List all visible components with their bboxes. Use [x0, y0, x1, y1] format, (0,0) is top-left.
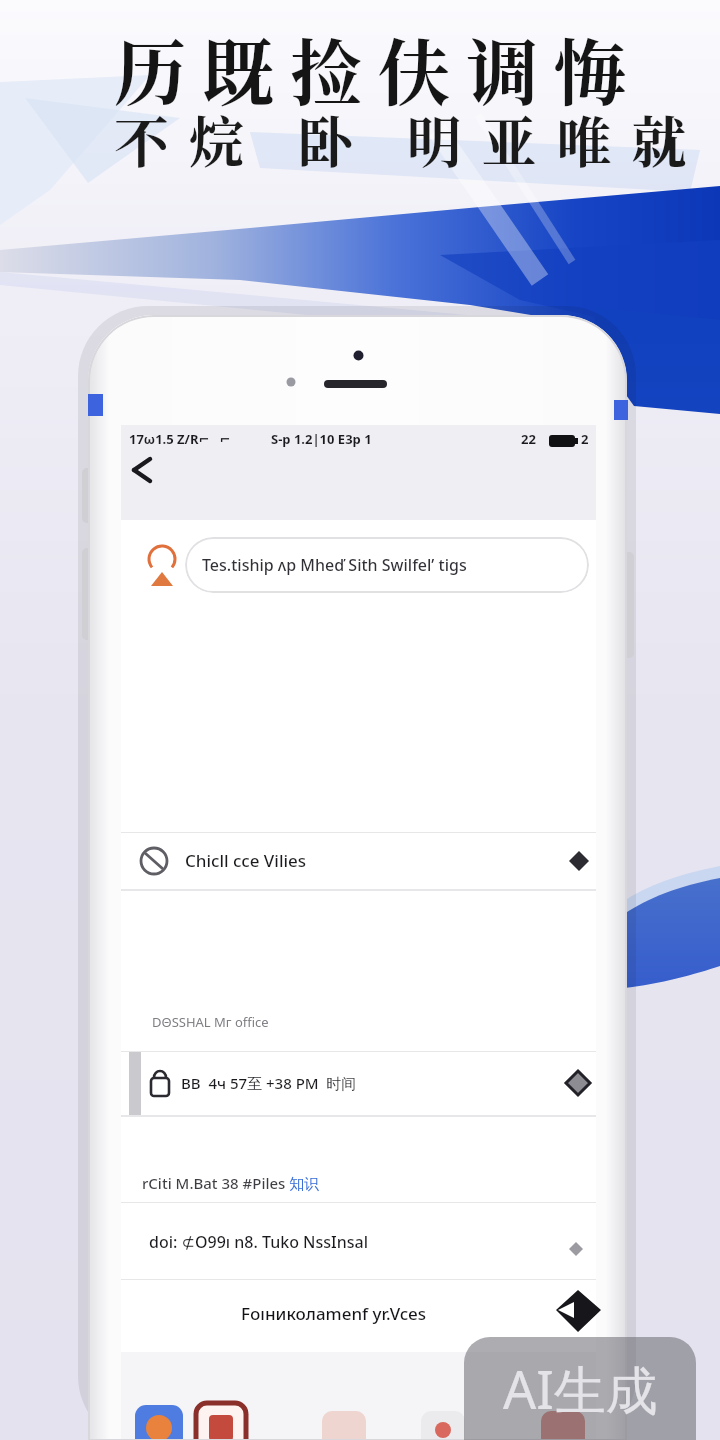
staticText: Chicll cce Vilies — [185, 849, 307, 872]
staticText: S-p 1.2|10 E3p 1 — [271, 430, 372, 448]
staticText: rCiti M.Bat 38 #Piles 知识 — [142, 1173, 320, 1193]
staticText: 22 — [521, 430, 536, 448]
button[interactable]: doi: ⊄O99ı n8. Tuko NssInsal — [121, 1203, 596, 1279]
staticText: 不烷 卧 明亚唯就 — [114, 99, 707, 178]
staticText: doi: ⊄O99ı n8. Tuko NssInsal — [149, 1231, 368, 1253]
button[interactable]: Chicll cce Vilies — [121, 833, 596, 889]
button[interactable] — [123, 449, 165, 493]
staticText: AI生成 — [503, 1353, 658, 1424]
staticText: 历既捡伕调悔 — [114, 16, 643, 119]
staticText: 17ω1.5 Z/R⌐ ⌐ — [129, 430, 231, 448]
staticText: Tes.tiship ʌp Mheď Sith Swilfelʼ tigs — [202, 554, 467, 576]
button[interactable]: Foıниколаmenf yr.Vces — [121, 1280, 596, 1352]
button[interactable]: AI生成 — [464, 1337, 696, 1440]
staticText: 2 — [581, 430, 589, 448]
staticText: ΒΒ 4ч 57至 +38 PM 时间 — [181, 1073, 357, 1093]
button[interactable]: ΒΒ 4ч 57至 +38 PM 时间 — [121, 1052, 596, 1115]
button[interactable]: Tes.tiship ʌp Mheď Sith Swilfelʼ tigs — [185, 537, 589, 593]
staticText: Foıниколаmenf yr.Vces — [241, 1302, 427, 1325]
staticText: DΘSSHAL Mг office — [152, 1013, 269, 1031]
